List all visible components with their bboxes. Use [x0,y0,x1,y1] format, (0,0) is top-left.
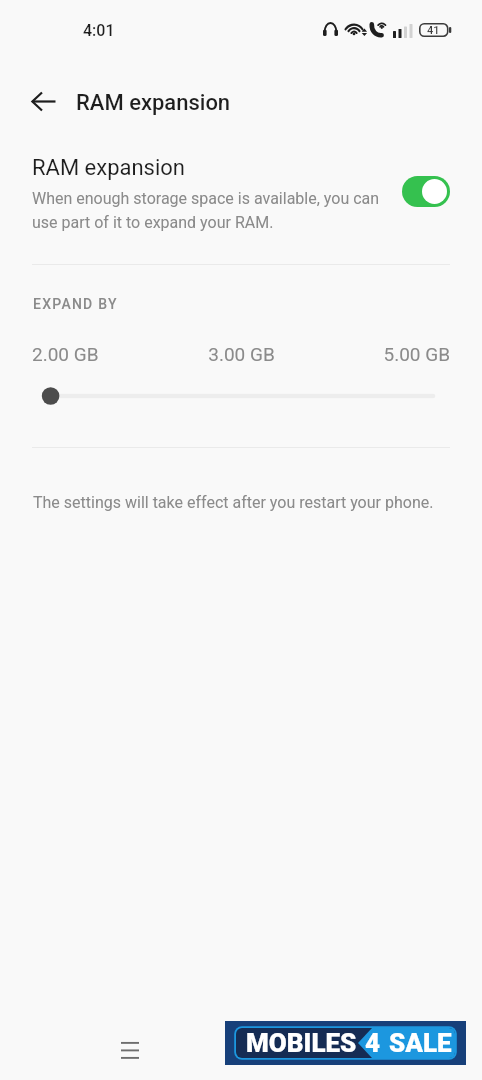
staticText: SALE [389,1028,452,1058]
staticText: 2.00 GB [32,343,172,365]
button[interactable]: Recent apps [108,1028,152,1072]
staticText: 3.00 GB [172,343,311,365]
button[interactable]: Expand by amount slider [32,382,450,410]
staticText: 4:01 [83,21,115,40]
staticText: 5.00 GB [311,343,450,365]
staticText: RAM expansion [76,90,231,116]
button[interactable]: RAM expansion switch [402,176,450,207]
staticText: 4 [365,1028,381,1058]
staticText: The settings will take effect after you … [33,493,434,512]
staticText: 41 [427,24,440,37]
button[interactable]: Back [21,79,65,123]
staticText: MOBILES [246,1028,357,1058]
staticText: When enough storage space is available, … [32,189,384,232]
staticText: EXPAND BY [33,296,118,312]
staticText: RAM expansion [32,155,186,181]
button[interactable]: RAM expansion [0,146,482,246]
